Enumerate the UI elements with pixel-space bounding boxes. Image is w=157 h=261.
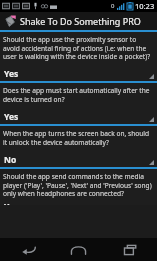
button[interactable]: Recents [107,238,152,261]
button[interactable]: Should the app use the proximity sensor … [0,32,157,83]
button[interactable]: Should the app send commands to the medi… [0,169,157,205]
staticText: When the app turns the screen back on, s… [3,129,154,147]
button[interactable]: Shake To Do Something PRO [0,12,157,30]
staticText: Shake To Do Something PRO [20,15,141,27]
other: Open dropdown [149,74,154,79]
staticText: Does the app must start automatically af… [3,86,154,104]
staticText: Should the app send commands to the medi… [3,172,154,198]
button[interactable]: Yes [0,201,157,205]
staticText: Yes [4,68,19,80]
button[interactable]: Home [56,238,101,261]
button[interactable]: Does the app must start automatically af… [0,83,157,126]
staticText: 10:23 [135,1,155,11]
other: Open dropdown [149,160,154,165]
button[interactable]: Yes [0,66,157,81]
button[interactable]: Back [6,238,51,261]
button[interactable]: Yes [0,109,157,124]
staticText: 0 [111,2,115,10]
button[interactable]: When the app turns the screen back on, s… [0,126,157,169]
staticText: Yes [4,111,19,123]
staticText: Yes [4,201,19,205]
other: Open dropdown [149,117,154,122]
staticText: Should the app use the proximity sensor … [3,35,154,61]
button[interactable]: No [0,152,157,167]
staticText: No [4,154,17,166]
